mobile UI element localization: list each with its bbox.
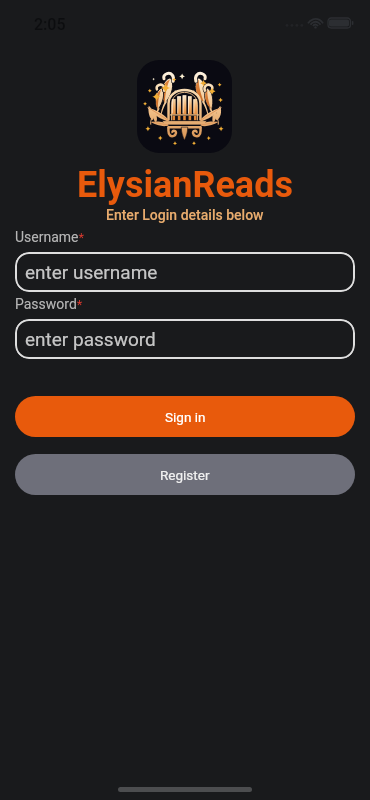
- other: Battery: [328, 18, 353, 28]
- staticText: 2:05: [34, 15, 66, 34]
- other: Cellular signal: [286, 21, 303, 29]
- staticText: ElysianReads: [77, 164, 293, 206]
- staticText: Password*: [15, 296, 83, 312]
- staticText: Enter Login details below: [106, 207, 264, 223]
- button[interactable]: enter username: [15, 252, 355, 292]
- button[interactable]: Register: [15, 454, 355, 495]
- other: Wi-Fi: [307, 16, 324, 28]
- staticText: Username*: [15, 229, 85, 245]
- button[interactable]: enter password: [15, 319, 355, 359]
- staticText: enter password: [25, 328, 156, 350]
- staticText: Sign in: [165, 409, 206, 425]
- staticText: Register: [160, 467, 210, 483]
- staticText: enter username: [25, 261, 158, 283]
- button[interactable]: Sign in: [15, 396, 355, 437]
